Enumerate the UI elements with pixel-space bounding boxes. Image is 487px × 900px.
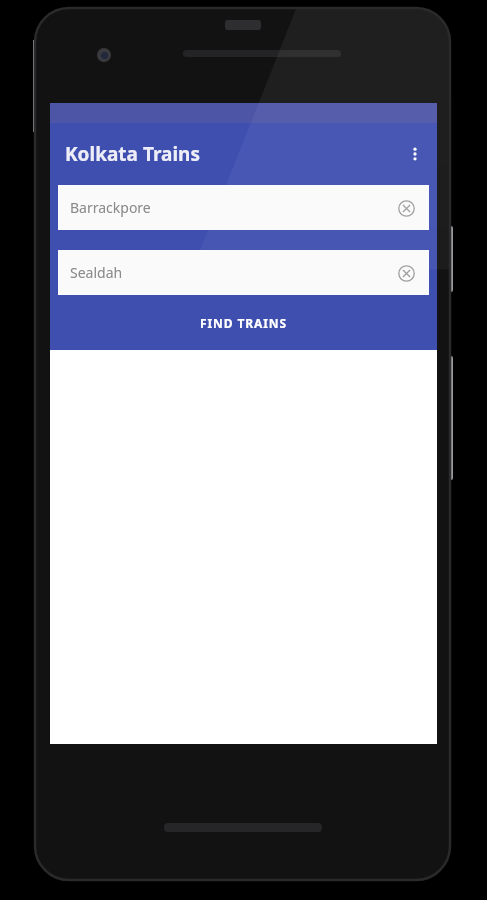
staticText: Sealdah	[70, 263, 123, 282]
other: Power	[444, 226, 453, 292]
other: Volume	[444, 356, 453, 480]
button[interactable]: Clear Barrackpore	[391, 193, 421, 223]
staticText: FIND TRAINS	[200, 315, 287, 331]
button[interactable]: More options	[393, 132, 437, 176]
button[interactable]: Sealdah	[58, 250, 429, 295]
staticText: Barrackpore	[70, 198, 151, 217]
button[interactable]: Clear Sealdah	[391, 258, 421, 288]
button[interactable]: Barrackpore	[58, 185, 429, 230]
button[interactable]: FIND TRAINS	[50, 295, 437, 350]
staticText: Kolkata Trains	[65, 141, 200, 167]
